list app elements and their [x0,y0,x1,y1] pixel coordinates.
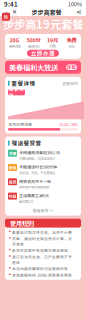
staticText: ‹ [5,5,8,19]
staticText: 会员 [68,44,74,49]
staticText: 9:41 [4,0,18,8]
button[interactable]: 语音 [5,162,81,177]
staticText: 视频会员月卡一张 [19,178,51,184]
staticText: 热 [4,14,8,20]
staticText: 步步高19元套餐 [3,16,83,32]
staticText: 每月赠送流量+通话时长 [22,32,64,38]
staticText: 美春福利大放送 [9,62,58,72]
staticText: 本活动最终解释权归运营商所有 [12,266,68,271]
staticText: 20G [9,36,19,44]
staticText: 会员权益需在有效期内激活使用 [12,248,68,253]
button[interactable]: Share [75,8,83,16]
button[interactable]: Close [11,8,18,16]
staticText: 100% [68,0,82,8]
button[interactable]: 成长规则 [5,87,25,95]
staticText: 全网通用流量包30G/月 [19,150,60,155]
staticText: 权益 [8,193,16,199]
staticText: ✕ [12,8,17,15]
staticText: 会员 [8,179,16,185]
staticText: 生活缴费立减5元 [19,193,49,198]
staticText: 免费 [66,36,76,44]
button[interactable]: Back [3,8,10,16]
button[interactable]: 立即办理 [27,50,59,57]
button[interactable]: 流量 [5,148,81,162]
button[interactable]: 美春福利大放送 [0,59,86,74]
staticText: 查看规则 [62,80,78,86]
staticText: 19元 [47,36,58,44]
staticText: 查看更多 ∨ [32,207,53,214]
staticText: 通话时长 [27,44,39,49]
staticText: 月费 [49,44,55,49]
staticText: 套餐详情 [12,79,36,87]
staticText: 语音 [8,165,16,170]
staticText: 套餐自订购次月生效，当月不计费 [12,230,72,235]
staticText: 领取 [66,64,76,71]
staticText: 500分 [26,36,40,44]
staticText: 流量、通话时长按自然月计算，次月清零 [12,236,72,247]
staticText: 通用流量 [8,44,20,49]
staticText: 使用规则 [10,219,34,227]
staticText: 全国通话时长500分钟 [19,164,57,170]
staticText: 每月限1次 [19,199,33,204]
staticText: 立即办理 [31,49,55,57]
staticText: 可叠加使用，次月自动续订 [19,156,55,161]
staticText: 流量 [8,150,16,156]
staticText: ⋖ [76,8,82,16]
staticText: 限新用户首月免费领取 [19,185,49,190]
button[interactable]: 权益 [5,191,81,205]
staticText: 咨询客服热线 10086 获取更多帮助 [12,272,72,278]
staticText: 步步高套餐 [31,8,61,16]
staticText: 退订后次月生效，已产生费用不予退还 [12,254,72,265]
button[interactable]: 会员 [5,177,81,191]
staticText: 含长途、市话，不含港澳台 [19,170,55,175]
button[interactable]: 查看更多 ∨ [5,205,81,216]
staticText: 成长规则 [9,86,24,99]
staticText: 赠送餐贺营 [12,139,42,147]
staticText: 15.2G/20G [59,121,78,127]
staticText: 本月已用流量 [8,121,32,127]
